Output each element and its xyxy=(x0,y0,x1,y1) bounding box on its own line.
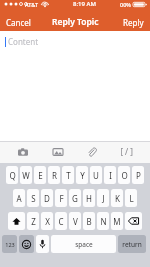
staticText: R xyxy=(52,170,57,181)
staticText: Reply Topic xyxy=(52,16,99,28)
staticText: C xyxy=(58,216,64,227)
staticText: K xyxy=(115,193,120,204)
staticText: Content xyxy=(8,36,39,47)
staticText: G xyxy=(72,193,78,204)
staticText: E xyxy=(38,170,43,181)
button[interactable]: return xyxy=(118,235,146,253)
button[interactable]: S xyxy=(27,189,39,207)
staticText: H xyxy=(86,193,92,204)
button[interactable]: Attach file xyxy=(83,143,101,161)
staticText: O xyxy=(121,170,128,181)
button[interactable]: E xyxy=(34,166,46,184)
button[interactable]: Z xyxy=(27,212,39,230)
button[interactable]: P xyxy=(132,166,144,184)
button[interactable]: B xyxy=(83,212,95,230)
staticText: F xyxy=(59,193,64,204)
button[interactable]: J xyxy=(97,189,109,207)
button[interactable]: G xyxy=(69,189,81,207)
button[interactable]: Emoji xyxy=(19,235,34,253)
button[interactable]: D xyxy=(41,189,53,207)
staticText: [/] xyxy=(119,146,135,158)
button[interactable]: 123 xyxy=(2,235,17,253)
button[interactable]: Shift xyxy=(8,212,25,230)
button[interactable]: R xyxy=(48,166,60,184)
staticText: X xyxy=(45,216,50,227)
staticText: space xyxy=(75,240,93,249)
staticText: Z xyxy=(31,216,36,227)
button[interactable]: V xyxy=(69,212,81,230)
button[interactable]: space xyxy=(51,235,116,253)
staticText: 00% xyxy=(120,1,131,8)
staticText: S xyxy=(31,193,36,204)
button[interactable]: Y xyxy=(76,166,88,184)
staticText: 8:19 AM xyxy=(73,0,96,8)
staticText: Reply xyxy=(123,17,144,28)
button[interactable]: C xyxy=(55,212,67,230)
staticText: U xyxy=(93,170,99,181)
button[interactable]: X xyxy=(41,212,53,230)
staticText: Y xyxy=(80,170,85,181)
button[interactable]: Q xyxy=(6,166,18,184)
button[interactable]: U xyxy=(90,166,102,184)
button[interactable]: N xyxy=(97,212,109,230)
button[interactable]: F xyxy=(55,189,67,207)
button[interactable]: K xyxy=(111,189,123,207)
staticText: J xyxy=(102,193,105,204)
button[interactable]: Content xyxy=(0,31,150,141)
button[interactable]: A xyxy=(13,189,25,207)
staticText: return xyxy=(122,240,142,249)
staticText: T xyxy=(66,170,71,181)
button[interactable]: I xyxy=(104,166,116,184)
staticText: A xyxy=(16,193,22,204)
button[interactable]: L xyxy=(125,189,137,207)
button[interactable]: H xyxy=(83,189,95,207)
staticText: 123 xyxy=(5,241,15,248)
staticText: P xyxy=(136,170,141,181)
staticText: M xyxy=(113,216,121,227)
button[interactable]: O xyxy=(118,166,130,184)
staticText: L xyxy=(129,193,134,204)
staticText: Cancel xyxy=(6,17,31,28)
button[interactable]: Reply xyxy=(117,14,150,31)
button[interactable]: Photo library xyxy=(49,143,67,161)
staticText: I xyxy=(109,170,112,181)
button[interactable]: Insert code xyxy=(118,143,136,161)
staticText: D xyxy=(44,193,50,204)
button[interactable]: Cancel xyxy=(0,14,37,31)
button[interactable]: Camera xyxy=(14,143,32,161)
staticText: N xyxy=(100,216,107,227)
button[interactable]: W xyxy=(20,166,32,184)
button[interactable]: Dictation xyxy=(36,235,49,253)
staticText: B xyxy=(86,216,92,227)
button[interactable]: Backspace xyxy=(125,212,142,230)
staticText: AT&T xyxy=(25,1,39,8)
button[interactable]: M xyxy=(111,212,123,230)
staticText: Q xyxy=(9,170,16,181)
staticText: W xyxy=(22,170,30,181)
staticText: V xyxy=(73,216,78,227)
button[interactable]: T xyxy=(62,166,74,184)
